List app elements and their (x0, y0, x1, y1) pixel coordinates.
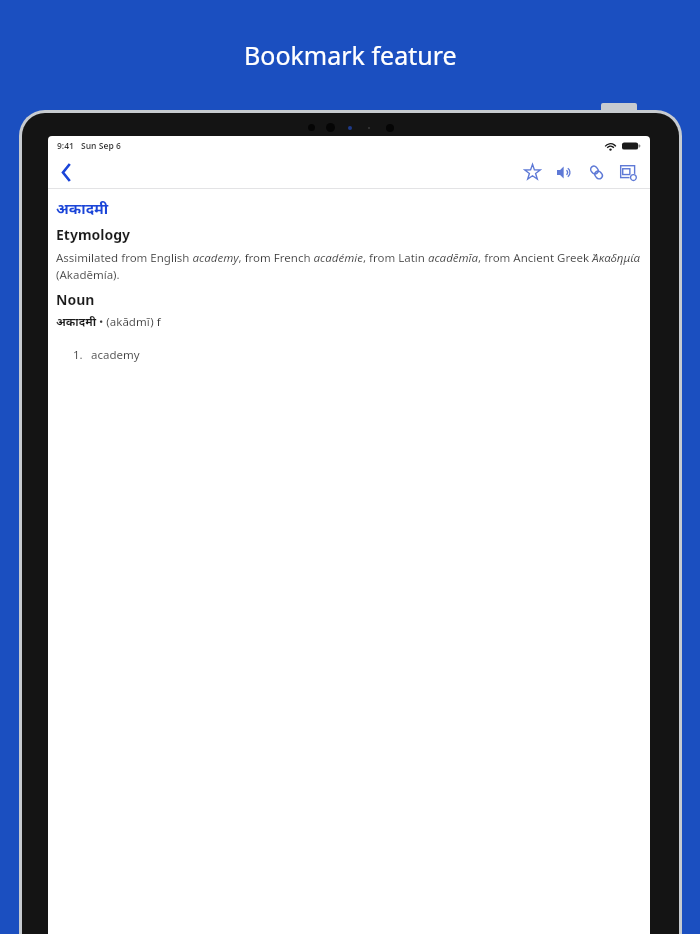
staticText: Bookmark feature (244, 38, 457, 72)
staticText: अकादमी (56, 198, 109, 218)
staticText: 1. (73, 347, 83, 363)
button[interactable]: Pronounce (548, 156, 580, 188)
staticText: academy (91, 347, 140, 363)
button[interactable]: Source article (612, 156, 644, 188)
staticText: अकादमी • (akādmī) f (56, 314, 161, 330)
button[interactable]: Copy link (580, 156, 612, 188)
button[interactable]: Back (50, 156, 82, 188)
staticText: Assimilated from English academy, from F… (56, 250, 642, 283)
staticText: Noun (56, 290, 95, 309)
staticText: Etymology (56, 225, 131, 244)
staticText: Sun Sep 6 (81, 140, 121, 152)
button[interactable]: Bookmark (516, 156, 548, 188)
staticText: 9:41 (57, 140, 74, 152)
